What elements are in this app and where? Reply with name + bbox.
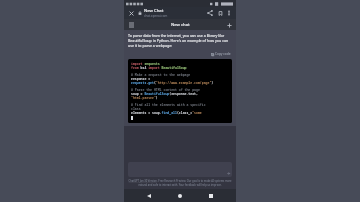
button[interactable]: Home <box>174 190 186 202</box>
staticText: from bs4 import BeautifulSoup <box>131 66 187 70</box>
staticText: response = <box>131 77 153 81</box>
other: Send message <box>226 171 230 175</box>
button[interactable]: Copy code <box>210 51 232 57</box>
staticText: elements = soup.find_all(class_="some <box>131 111 202 115</box>
button[interactable]: Bookmark <box>215 8 225 18</box>
button[interactable]: Close <box>127 9 136 18</box>
button[interactable]: Menu <box>127 21 135 29</box>
staticText: ChatGPT Jan 30 Version. Free Research Pr… <box>128 179 232 187</box>
staticText: Copy code <box>215 52 231 56</box>
button[interactable]: Share <box>205 8 215 18</box>
staticText: # Make a request to the webpage <box>131 73 191 77</box>
staticText: # Parse the HTML content of the page <box>131 88 200 92</box>
button[interactable]: More options <box>225 9 233 17</box>
staticText: New Chat <box>144 8 164 14</box>
staticText: To parse data from the internet, you can… <box>128 33 232 48</box>
button[interactable]: Back <box>143 190 155 202</box>
staticText: soup = BeautifulSoup(response.text, <box>131 92 200 96</box>
staticText: # Find all the elements with a specific <box>131 103 206 107</box>
button[interactable]: Recent apps <box>205 190 217 202</box>
staticText: New chat <box>171 22 190 28</box>
staticText: requests.get("http://www.example.com/pag… <box>131 81 214 85</box>
staticText: chat.openai.com <box>144 14 168 18</box>
button[interactable]: New chat <box>225 21 233 29</box>
staticText: "html.parser") <box>131 96 158 100</box>
staticText: import requests <box>131 62 160 66</box>
staticText: class <box>131 107 141 111</box>
